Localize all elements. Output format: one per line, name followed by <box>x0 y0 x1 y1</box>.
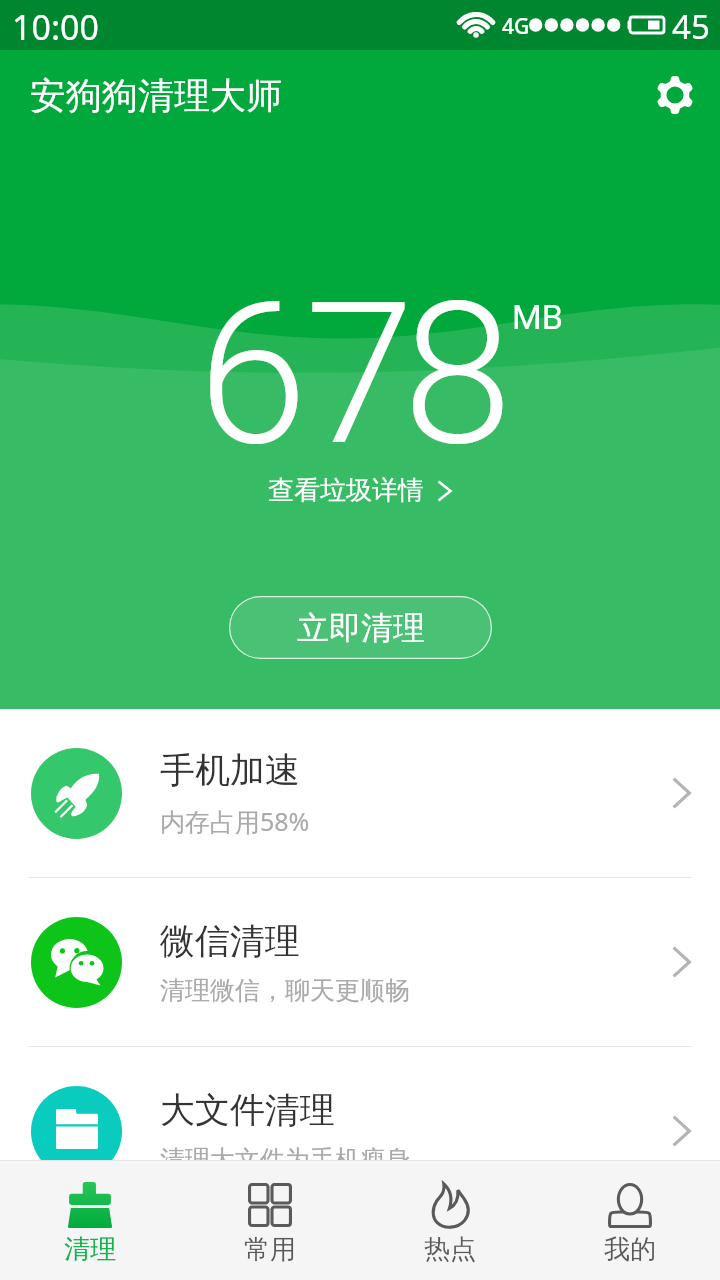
staticText: 8 <box>403 259 513 490</box>
staticText: 查看垃圾详情 <box>268 474 424 507</box>
button[interactable]: 微信清理 <box>0 878 720 1046</box>
staticText: 立即清理 <box>297 608 425 648</box>
staticText: 大文件清理 <box>160 1088 335 1132</box>
button[interactable]: 大文件清理 <box>0 1047 720 1215</box>
button[interactable]: 查看垃圾详情 <box>268 474 452 507</box>
button[interactable]: 常用 <box>180 1161 360 1280</box>
staticText: MB <box>512 297 563 337</box>
staticText: 清理大文件为手机瘦身 <box>160 1144 410 1175</box>
staticText: 清理 <box>64 1233 116 1266</box>
staticText: 热点 <box>424 1233 476 1266</box>
staticText: 45 <box>672 4 710 49</box>
staticText: 安狗狗清理大师 <box>30 73 282 118</box>
staticText: 7 <box>305 259 415 490</box>
button[interactable]: Settings <box>630 50 720 140</box>
button[interactable]: 手机加速 <box>0 709 720 877</box>
button[interactable]: 立即清理 <box>229 596 492 659</box>
staticText: 内存占用58% <box>160 804 310 838</box>
button[interactable]: 我的 <box>540 1161 720 1280</box>
button[interactable]: 热点 <box>360 1161 540 1280</box>
staticText: 4G <box>502 12 530 41</box>
staticText: 常用 <box>244 1233 296 1266</box>
staticText: 我的 <box>604 1233 656 1266</box>
staticText: 手机加速 <box>160 748 300 792</box>
button[interactable]: 清理 <box>0 1161 180 1280</box>
staticText: 6 <box>198 259 308 490</box>
staticText: 10:00 <box>12 4 99 50</box>
staticText: 清理微信，聊天更顺畅 <box>160 975 410 1006</box>
staticText: 微信清理 <box>160 919 300 963</box>
